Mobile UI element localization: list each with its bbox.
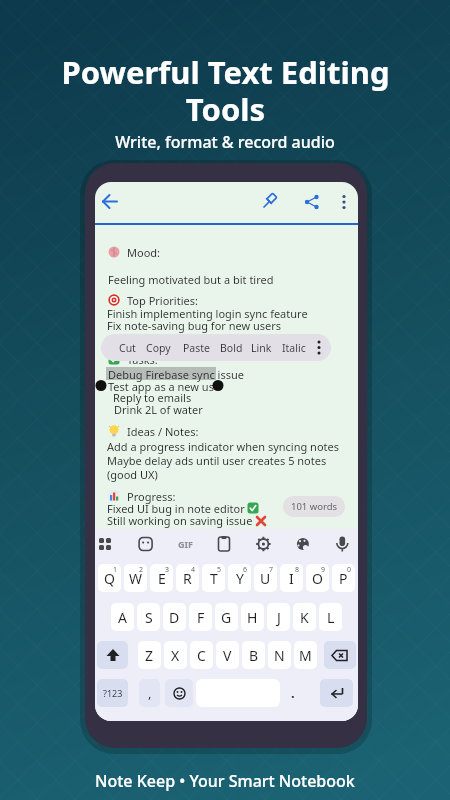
button[interactable]: I (280, 564, 303, 592)
staticText: V (223, 646, 232, 665)
button[interactable]: G (215, 603, 238, 631)
staticText: Add a progress indicator when syncing no… (107, 439, 340, 454)
button[interactable]: Copy (146, 334, 171, 361)
button[interactable]: B (242, 641, 265, 669)
staticText: G (221, 608, 232, 627)
staticText: Copy (146, 341, 171, 355)
staticText: 8 (295, 565, 300, 575)
staticText: F (197, 608, 205, 627)
staticText: C (197, 646, 206, 665)
button[interactable]: L (319, 603, 342, 631)
button[interactable]: E (150, 564, 173, 592)
button[interactable] (261, 192, 279, 210)
staticText: Y (236, 569, 244, 588)
button[interactable]: Italic (282, 334, 306, 361)
staticText: Italic (282, 341, 306, 355)
staticText: 4 (191, 565, 196, 575)
staticText: ?123 (103, 687, 123, 699)
staticText: X (171, 646, 180, 665)
button[interactable]: W (124, 564, 147, 592)
staticText: W (129, 569, 143, 588)
staticText: Mood: (127, 245, 160, 260)
staticText: L (327, 608, 335, 627)
staticText: 1 (113, 565, 118, 575)
staticText: 5 (217, 565, 222, 575)
button[interactable]: Q (98, 564, 121, 592)
button[interactable] (165, 679, 193, 707)
staticText: Note Keep • Your Smart Notebook (95, 770, 355, 792)
button[interactable]: , (139, 679, 160, 707)
staticText: Finish implementing login sync feature (107, 306, 308, 321)
button[interactable]: J (267, 603, 290, 631)
staticText: H (247, 608, 258, 627)
button[interactable] (320, 679, 353, 707)
button[interactable]: V (216, 641, 239, 669)
button[interactable]: O (306, 564, 329, 592)
staticText: Progress: (127, 489, 176, 504)
staticText: Ideas / Notes: (127, 424, 199, 439)
button[interactable]: M (294, 641, 317, 669)
button[interactable]: S (137, 603, 160, 631)
staticText: U (260, 569, 271, 588)
staticText: D (169, 608, 180, 627)
staticText: 3 (165, 565, 170, 575)
staticText: T (210, 569, 218, 588)
staticText: Z (145, 646, 154, 665)
staticText: . (291, 684, 295, 702)
button[interactable] (313, 338, 325, 357)
staticText: 2 (139, 565, 144, 575)
button[interactable]: Cut (119, 334, 136, 361)
button[interactable] (304, 194, 320, 210)
staticText: K (300, 608, 309, 627)
staticText: M (299, 646, 312, 665)
button[interactable]: R (176, 564, 199, 592)
staticText: (good UX) (107, 467, 158, 482)
button[interactable]: D (163, 603, 186, 631)
button[interactable]: X (164, 641, 187, 669)
button[interactable]: K (293, 603, 316, 631)
staticText: J (277, 608, 281, 627)
staticText: Top Priorities: (127, 293, 198, 308)
staticText: B (249, 646, 259, 665)
button[interactable]: Paste (183, 334, 210, 361)
staticText: 0 (347, 565, 352, 575)
button[interactable]: U (254, 564, 277, 592)
staticText: Debug Firebase sync issue (108, 367, 244, 382)
staticText: Paste (183, 341, 210, 355)
staticText: 9 (321, 565, 326, 575)
button[interactable]: F (189, 603, 212, 631)
staticText: Test app as a new us (108, 379, 214, 394)
button[interactable]: A (111, 603, 134, 631)
staticText: I (289, 569, 294, 588)
staticText: Feeling motivated but a bit tired (108, 272, 274, 287)
button[interactable]: . (285, 679, 301, 707)
button[interactable]: ?123 (97, 679, 128, 707)
button[interactable] (340, 193, 348, 211)
button[interactable]: H (241, 603, 264, 631)
button[interactable]: Link (251, 334, 272, 361)
button[interactable]: Bold (220, 334, 243, 361)
button[interactable]: Y (228, 564, 251, 592)
button[interactable]: N (268, 641, 291, 669)
staticText: Q (104, 569, 115, 588)
button[interactable]: P (332, 564, 355, 592)
staticText: 101 words (291, 500, 338, 513)
staticText: S (145, 608, 153, 627)
button[interactable] (101, 192, 120, 211)
staticText: , (148, 684, 152, 702)
staticText: Bold (220, 341, 243, 355)
button[interactable]: GIF (173, 537, 197, 551)
button[interactable]: C (190, 641, 213, 669)
staticText: Fix note-saving bug for new users (107, 318, 282, 333)
staticText: E (158, 569, 166, 588)
staticText: Reply to emails (113, 390, 192, 405)
button[interactable] (324, 641, 356, 669)
staticText: P (339, 569, 348, 588)
staticText: 6 (243, 565, 248, 575)
staticText: Drink 2L of water (114, 402, 203, 417)
button[interactable] (97, 641, 128, 669)
button[interactable]: T (202, 564, 225, 592)
button[interactable]: Z (138, 641, 161, 669)
staticText: Cut (119, 341, 136, 355)
